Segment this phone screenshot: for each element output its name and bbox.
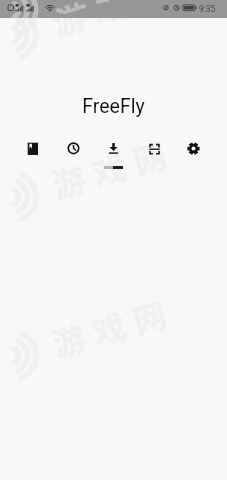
staticText: 游戏网 — [42, 0, 176, 48]
staticText: 游戏网 — [46, 0, 172, 18]
button[interactable]: History — [67, 141, 80, 154]
staticText: 游戏网 — [42, 129, 176, 209]
staticText: 9:35 — [199, 4, 216, 14]
staticText: FreeFly — [82, 95, 145, 118]
button[interactable]: Bookmarks — [26, 141, 39, 154]
button[interactable]: Downloads — [107, 141, 120, 154]
button[interactable]: Scan QR code — [148, 141, 161, 154]
button[interactable]: Settings — [187, 141, 200, 154]
